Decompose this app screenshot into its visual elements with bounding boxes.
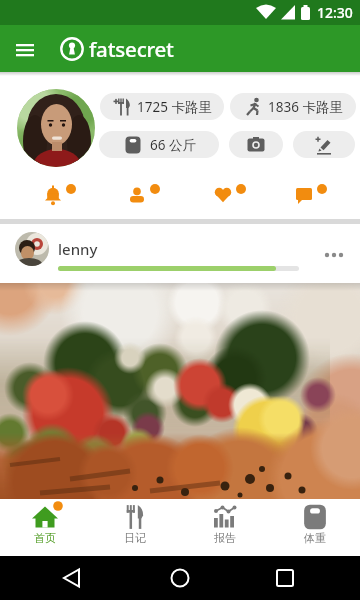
button[interactable]: 首页 bbox=[0, 499, 90, 556]
staticText: 首页 bbox=[34, 531, 56, 545]
button[interactable] bbox=[203, 175, 243, 215]
button[interactable] bbox=[293, 131, 355, 158]
button[interactable] bbox=[284, 175, 324, 215]
button[interactable] bbox=[17, 89, 95, 167]
button[interactable] bbox=[0, 556, 120, 600]
button[interactable]: 体重 bbox=[270, 499, 360, 556]
button[interactable] bbox=[0, 283, 360, 499]
staticText: 66 公斤 bbox=[150, 136, 196, 154]
button[interactable] bbox=[33, 175, 73, 215]
staticText: 12:30 bbox=[317, 3, 353, 22]
staticText: 体重 bbox=[304, 531, 326, 545]
button[interactable] bbox=[117, 175, 157, 215]
button[interactable] bbox=[8, 33, 42, 67]
staticText: 日记 bbox=[124, 531, 146, 545]
button[interactable] bbox=[229, 131, 283, 158]
staticText: 1725 卡路里 bbox=[137, 98, 212, 116]
staticText: 报告 bbox=[214, 531, 236, 545]
button[interactable]: 日记 bbox=[90, 499, 180, 556]
button[interactable]: lenny bbox=[0, 224, 360, 283]
button[interactable] bbox=[120, 556, 240, 600]
button[interactable] bbox=[240, 556, 360, 600]
button[interactable]: fatsecret bbox=[61, 25, 174, 72]
button[interactable]: 66 公斤 bbox=[99, 131, 219, 158]
button[interactable]: 1725 卡路里 bbox=[100, 93, 224, 120]
staticText: lenny bbox=[58, 239, 98, 259]
staticText: 1836 卡路里 bbox=[268, 98, 343, 116]
button[interactable]: 1836 卡路里 bbox=[230, 93, 356, 120]
button[interactable]: 报告 bbox=[180, 499, 270, 556]
staticText: fatsecret bbox=[89, 35, 174, 63]
